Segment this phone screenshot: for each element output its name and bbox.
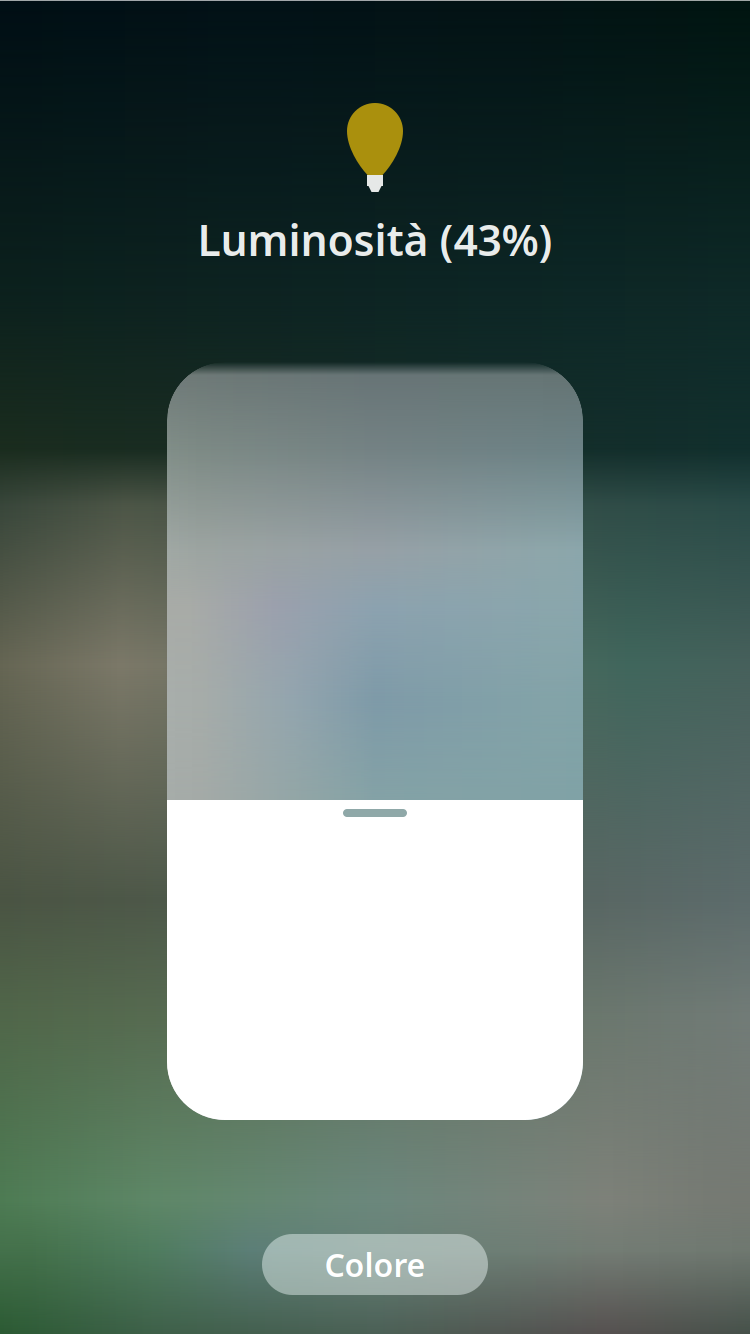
button[interactable]: Colore <box>262 1234 488 1295</box>
staticText: Colore <box>324 1243 425 1286</box>
staticText: Luminosità (43%) <box>197 211 552 268</box>
